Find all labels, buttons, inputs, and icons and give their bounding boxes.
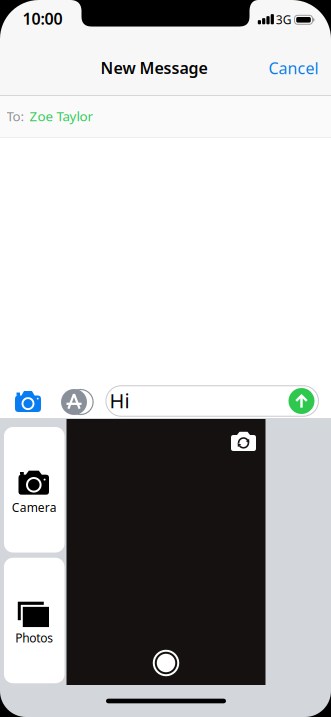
button[interactable]: Cancel: [268, 57, 318, 79]
staticText: New Message: [100, 57, 207, 78]
staticText: Cancel: [268, 57, 318, 79]
staticText: To:: [6, 107, 24, 125]
button[interactable]: Camera: [4, 427, 64, 552]
staticText: 3G: [276, 12, 292, 27]
button[interactable]: Send: [288, 388, 314, 414]
button[interactable]: Take picture: [152, 649, 179, 676]
button[interactable]: Photos: [4, 558, 64, 683]
button[interactable]: Apps: [63, 388, 97, 415]
staticText: Hi: [109, 387, 129, 414]
button[interactable]: Flip camera: [230, 431, 256, 451]
button[interactable]: [106, 386, 318, 416]
staticText: Camera: [12, 499, 57, 515]
staticText: 10:00: [22, 8, 62, 29]
button[interactable]: Camera: [13, 390, 43, 414]
staticText: Zoe Taylor: [29, 107, 93, 125]
staticText: Photos: [15, 630, 53, 646]
